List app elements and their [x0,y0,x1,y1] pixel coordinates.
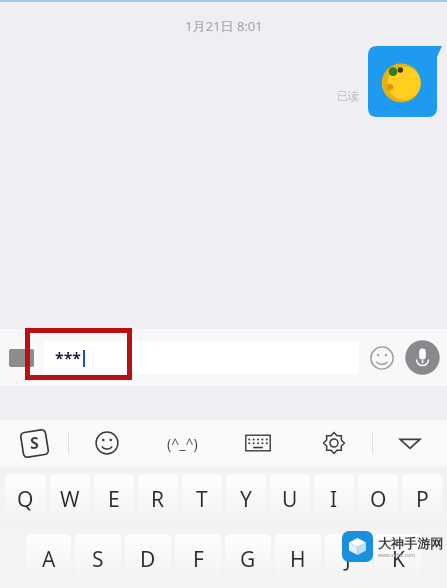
staticText: 大神手游网 [378,535,443,551]
staticText: Q [17,485,34,514]
button[interactable]: Settings [296,420,372,466]
button[interactable]: D [125,534,171,584]
button[interactable]: F [175,534,221,584]
staticText: (^_^) [167,434,198,453]
staticText: U [282,485,298,514]
button[interactable]: J [325,534,371,584]
staticText: S [30,432,39,454]
button[interactable]: Sogou [0,420,68,466]
button[interactable]: Gallery [7,343,37,373]
button[interactable]: Hide keyboard [373,420,447,466]
staticText: D [140,545,156,574]
staticText: P [416,485,429,514]
staticText: K [392,545,405,574]
staticText: I [330,485,338,514]
staticText: 1月21日 8:01 [185,17,263,35]
button[interactable]: Kaomoji [144,420,220,466]
staticText: W [60,485,80,514]
button[interactable]: Emoji [367,343,397,373]
button[interactable]: O [358,474,398,524]
staticText: *** [55,347,82,369]
button[interactable]: Q [5,474,46,524]
button[interactable]: T [182,474,222,524]
button[interactable]: Y [226,474,266,524]
button[interactable]: G [225,534,271,584]
staticText: F [193,545,204,574]
staticText: E [108,485,120,514]
staticText: www.xxfcu.com [378,552,415,559]
button[interactable]: A [26,534,71,584]
button[interactable]: Emoji panel [69,420,144,466]
button[interactable]: P [402,474,442,524]
button[interactable]: U [270,474,310,524]
staticText: T [196,485,208,514]
button[interactable]: I [314,474,354,524]
staticText: H [290,545,306,574]
button[interactable]: W [50,474,90,524]
staticText: J [345,545,351,574]
staticText: G [240,545,256,574]
button[interactable]: E [94,474,134,524]
staticText: 已读 [337,89,359,103]
staticText: O [370,485,387,514]
button[interactable]: K [375,534,421,584]
button[interactable]: H [275,534,321,584]
staticText: Y [240,485,252,514]
button[interactable]: *** [44,341,359,374]
button[interactable]: R [138,474,178,524]
button[interactable] [368,46,442,117]
staticText: R [151,485,165,514]
button[interactable]: S [75,534,121,584]
staticText: A [42,545,56,574]
button[interactable]: Keyboard layout [220,420,296,466]
staticText: S [92,545,104,574]
button[interactable]: Voice input [404,339,441,376]
